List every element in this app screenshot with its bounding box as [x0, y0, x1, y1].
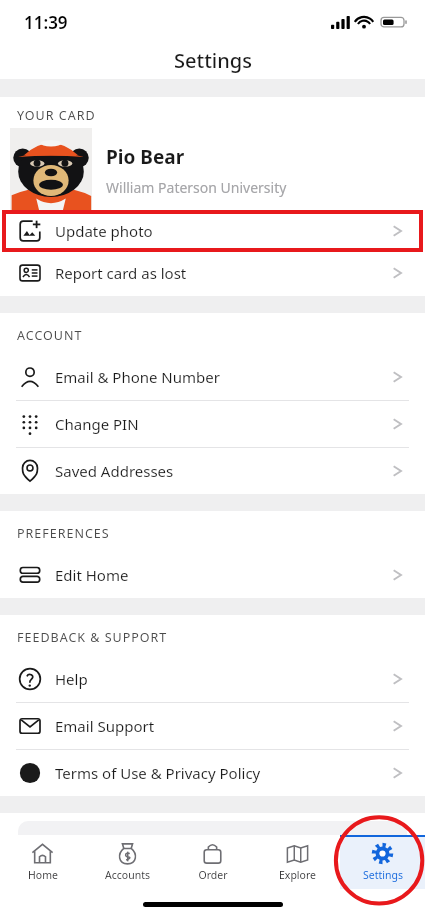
staticText: Settings — [174, 47, 252, 74]
button[interactable]: Help — [0, 656, 425, 702]
staticText: Update photo — [55, 221, 392, 241]
staticText: Accounts — [105, 868, 150, 882]
staticText: Email Support — [55, 716, 392, 736]
staticText: Edit Home — [55, 565, 392, 585]
staticText: Change PIN — [55, 414, 392, 434]
button[interactable]: Change PIN — [0, 401, 425, 447]
button[interactable]: Edit Home — [0, 552, 425, 598]
button[interactable]: Email Support — [0, 703, 425, 749]
staticText: Explore — [279, 868, 316, 882]
button[interactable]: Accounts — [85, 835, 170, 889]
staticText: ACCOUNT — [17, 327, 83, 344]
button[interactable]: Order — [170, 835, 255, 889]
staticText: Order — [198, 868, 228, 882]
staticText: LOG OUT — [177, 833, 248, 853]
button[interactable]: Update photo — [4, 212, 421, 250]
staticText: Settings — [363, 868, 403, 882]
button[interactable]: Settings — [340, 835, 425, 889]
staticText: YOUR CARD — [17, 107, 96, 124]
staticText: PREFERENCES — [17, 525, 110, 542]
staticText: Pio Bear — [106, 144, 185, 170]
staticText: Help — [55, 669, 392, 689]
button[interactable]: Home — [0, 835, 85, 889]
button[interactable]: Explore — [255, 835, 340, 889]
staticText: Home — [28, 868, 58, 882]
staticText: Saved Addresses — [55, 461, 392, 481]
staticText: Email & Phone Number — [55, 367, 392, 387]
staticText: William Paterson University — [106, 178, 287, 197]
staticText: FEEDBACK & SUPPORT — [17, 629, 168, 646]
staticText: 11:39 — [24, 11, 68, 34]
staticText: Report card as lost — [55, 263, 392, 283]
button[interactable]: Report card as lost — [0, 250, 425, 296]
button[interactable]: LOG OUT — [18, 821, 407, 865]
button[interactable]: Terms of Use & Privacy Policy — [0, 750, 425, 796]
button[interactable]: Email & Phone Number — [0, 354, 425, 400]
staticText: Terms of Use & Privacy Policy — [55, 763, 392, 783]
button[interactable]: Saved Addresses — [0, 448, 425, 494]
